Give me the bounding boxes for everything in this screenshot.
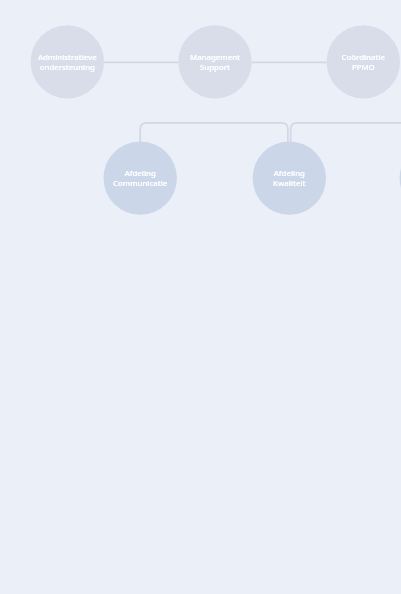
button[interactable]: Management Support (178, 25, 251, 98)
button[interactable]: Coördinatie PPMO (327, 25, 400, 98)
button[interactable]: Administratieve ondersteuning (31, 25, 104, 98)
button[interactable]: Afdeling ICT (400, 141, 401, 214)
button[interactable]: Afdeling Communicatie (104, 141, 177, 214)
button[interactable]: Afdeling Kwaliteit (253, 141, 326, 214)
